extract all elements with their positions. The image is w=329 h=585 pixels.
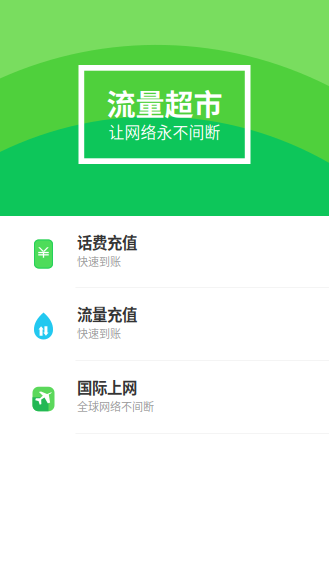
staticText: 流量充值 bbox=[77, 303, 137, 325]
button[interactable]: 国际上网 bbox=[0, 361, 329, 434]
staticText: 全球网络不间断 bbox=[77, 398, 154, 414]
staticText: 流量超市 bbox=[106, 82, 222, 124]
staticText: 话费充值 bbox=[77, 231, 137, 253]
button[interactable]: 话费充值 bbox=[0, 217, 329, 288]
staticText: 快速到账 bbox=[77, 325, 121, 341]
button[interactable]: 流量充值 bbox=[0, 288, 329, 361]
staticText: 国际上网 bbox=[77, 376, 137, 398]
staticText: 让网络永不间断 bbox=[108, 120, 220, 143]
staticText: 快速到账 bbox=[77, 253, 121, 269]
